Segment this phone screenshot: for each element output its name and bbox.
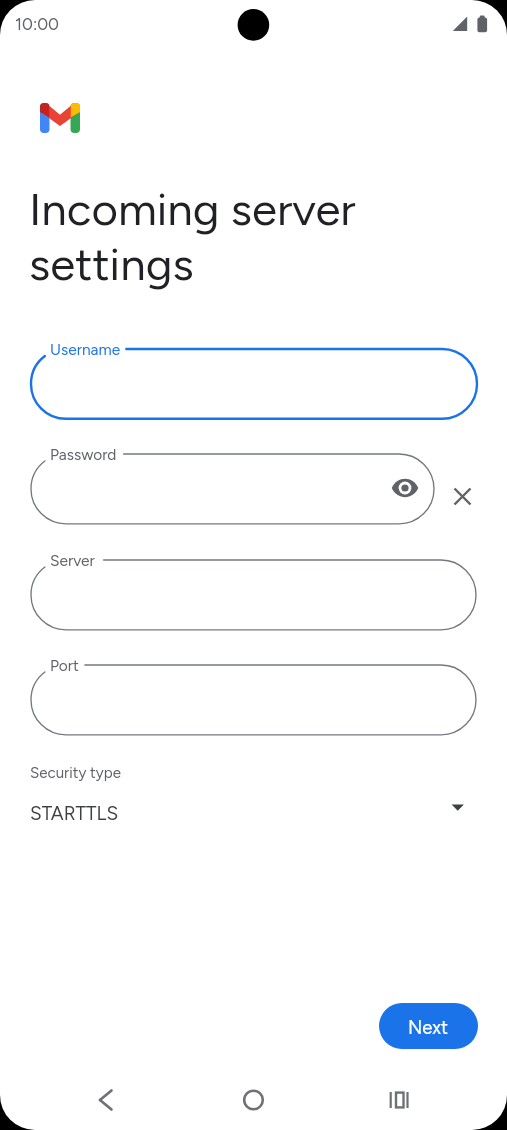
staticText: Server — [50, 551, 95, 570]
staticText: Port — [50, 656, 79, 675]
staticText: Password — [50, 445, 117, 464]
button[interactable]: Recent apps — [376, 1076, 424, 1124]
button[interactable]: Server — [0, 544, 507, 646]
button[interactable]: Password — [0, 438, 507, 540]
staticText: Username — [50, 340, 121, 359]
staticText: Next — [408, 1016, 449, 1038]
button[interactable]: Username — [0, 333, 507, 435]
button[interactable]: Port — [0, 649, 507, 751]
button[interactable]: Show password — [387, 470, 423, 506]
button[interactable]: Back — [82, 1076, 130, 1124]
button[interactable]: Security type — [0, 755, 507, 835]
button[interactable]: Clear password — [445, 479, 480, 514]
staticText: STARTTLS — [30, 802, 119, 825]
staticText: 10:00 — [15, 14, 60, 34]
button[interactable]: Home — [230, 1076, 278, 1124]
staticText: Incoming server settings — [29, 182, 356, 291]
button[interactable]: Next — [379, 1003, 478, 1049]
staticText: Security type — [30, 764, 121, 782]
